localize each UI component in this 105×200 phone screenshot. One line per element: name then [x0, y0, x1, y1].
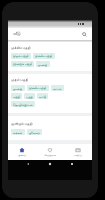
staticText: எட்டு — [39, 95, 46, 98]
button[interactable]: ஐந்து — [24, 93, 35, 99]
staticText: நான்கு — [38, 63, 48, 66]
staticText: நான்கு — [13, 87, 23, 90]
staticText: முதல் பகுதி — [11, 77, 29, 82]
staticText: முகப்பு — [18, 154, 26, 157]
button[interactable]: தொழில்நுட்பம் — [11, 101, 35, 107]
staticText: முக்கிய பகுதி — [35, 54, 53, 58]
staticText: பகுதி — [13, 95, 20, 98]
button[interactable]: முதல் பகுதி — [11, 53, 31, 59]
other: Home — [48, 162, 52, 166]
staticText: முதல் பகுதி — [13, 54, 29, 58]
button[interactable]: எட்டு — [37, 93, 48, 99]
button[interactable]: சட்டம் — [51, 85, 64, 91]
staticText: மூன்றாம் பகுதி — [11, 121, 33, 126]
button[interactable]: முகப்பு — [8, 147, 36, 157]
button[interactable]: Search — [80, 30, 89, 39]
staticText: தொழில்நுட்பம் — [13, 103, 33, 106]
button[interactable]: தலைவர் — [27, 129, 42, 135]
staticText: முக்கிய பகுதி — [11, 45, 31, 50]
other: Recents — [70, 162, 74, 166]
staticText: வகுப்பு — [74, 154, 82, 157]
button[interactable]: நான்கு — [11, 85, 25, 91]
staticText: ஐந்து — [26, 95, 33, 98]
button[interactable]: வகுப்பு — [64, 147, 92, 157]
button[interactable]: பிடித்தவை — [36, 147, 64, 157]
staticText: முக்கிய பகுதி — [29, 86, 47, 90]
button[interactable]: பகுதி — [11, 93, 22, 99]
button[interactable]: மூன்றாம் பகுதி — [11, 61, 34, 67]
other: Back — [26, 162, 30, 166]
staticText: மூன்றாம் பகுதி — [13, 62, 32, 66]
button[interactable]: முக்கிய பகுதி — [27, 85, 49, 91]
button[interactable]: மக்கள் — [11, 129, 25, 135]
staticText: சட்டம் — [53, 87, 62, 90]
button[interactable]: முக்கிய பகுதி — [33, 53, 55, 59]
staticText: தலைவர் — [29, 131, 40, 134]
staticText: வீடு — [13, 31, 21, 36]
staticText: மக்கள் — [13, 131, 23, 134]
button[interactable]: நான்கு — [36, 61, 50, 67]
staticText: பிடித்தவை — [44, 154, 56, 157]
